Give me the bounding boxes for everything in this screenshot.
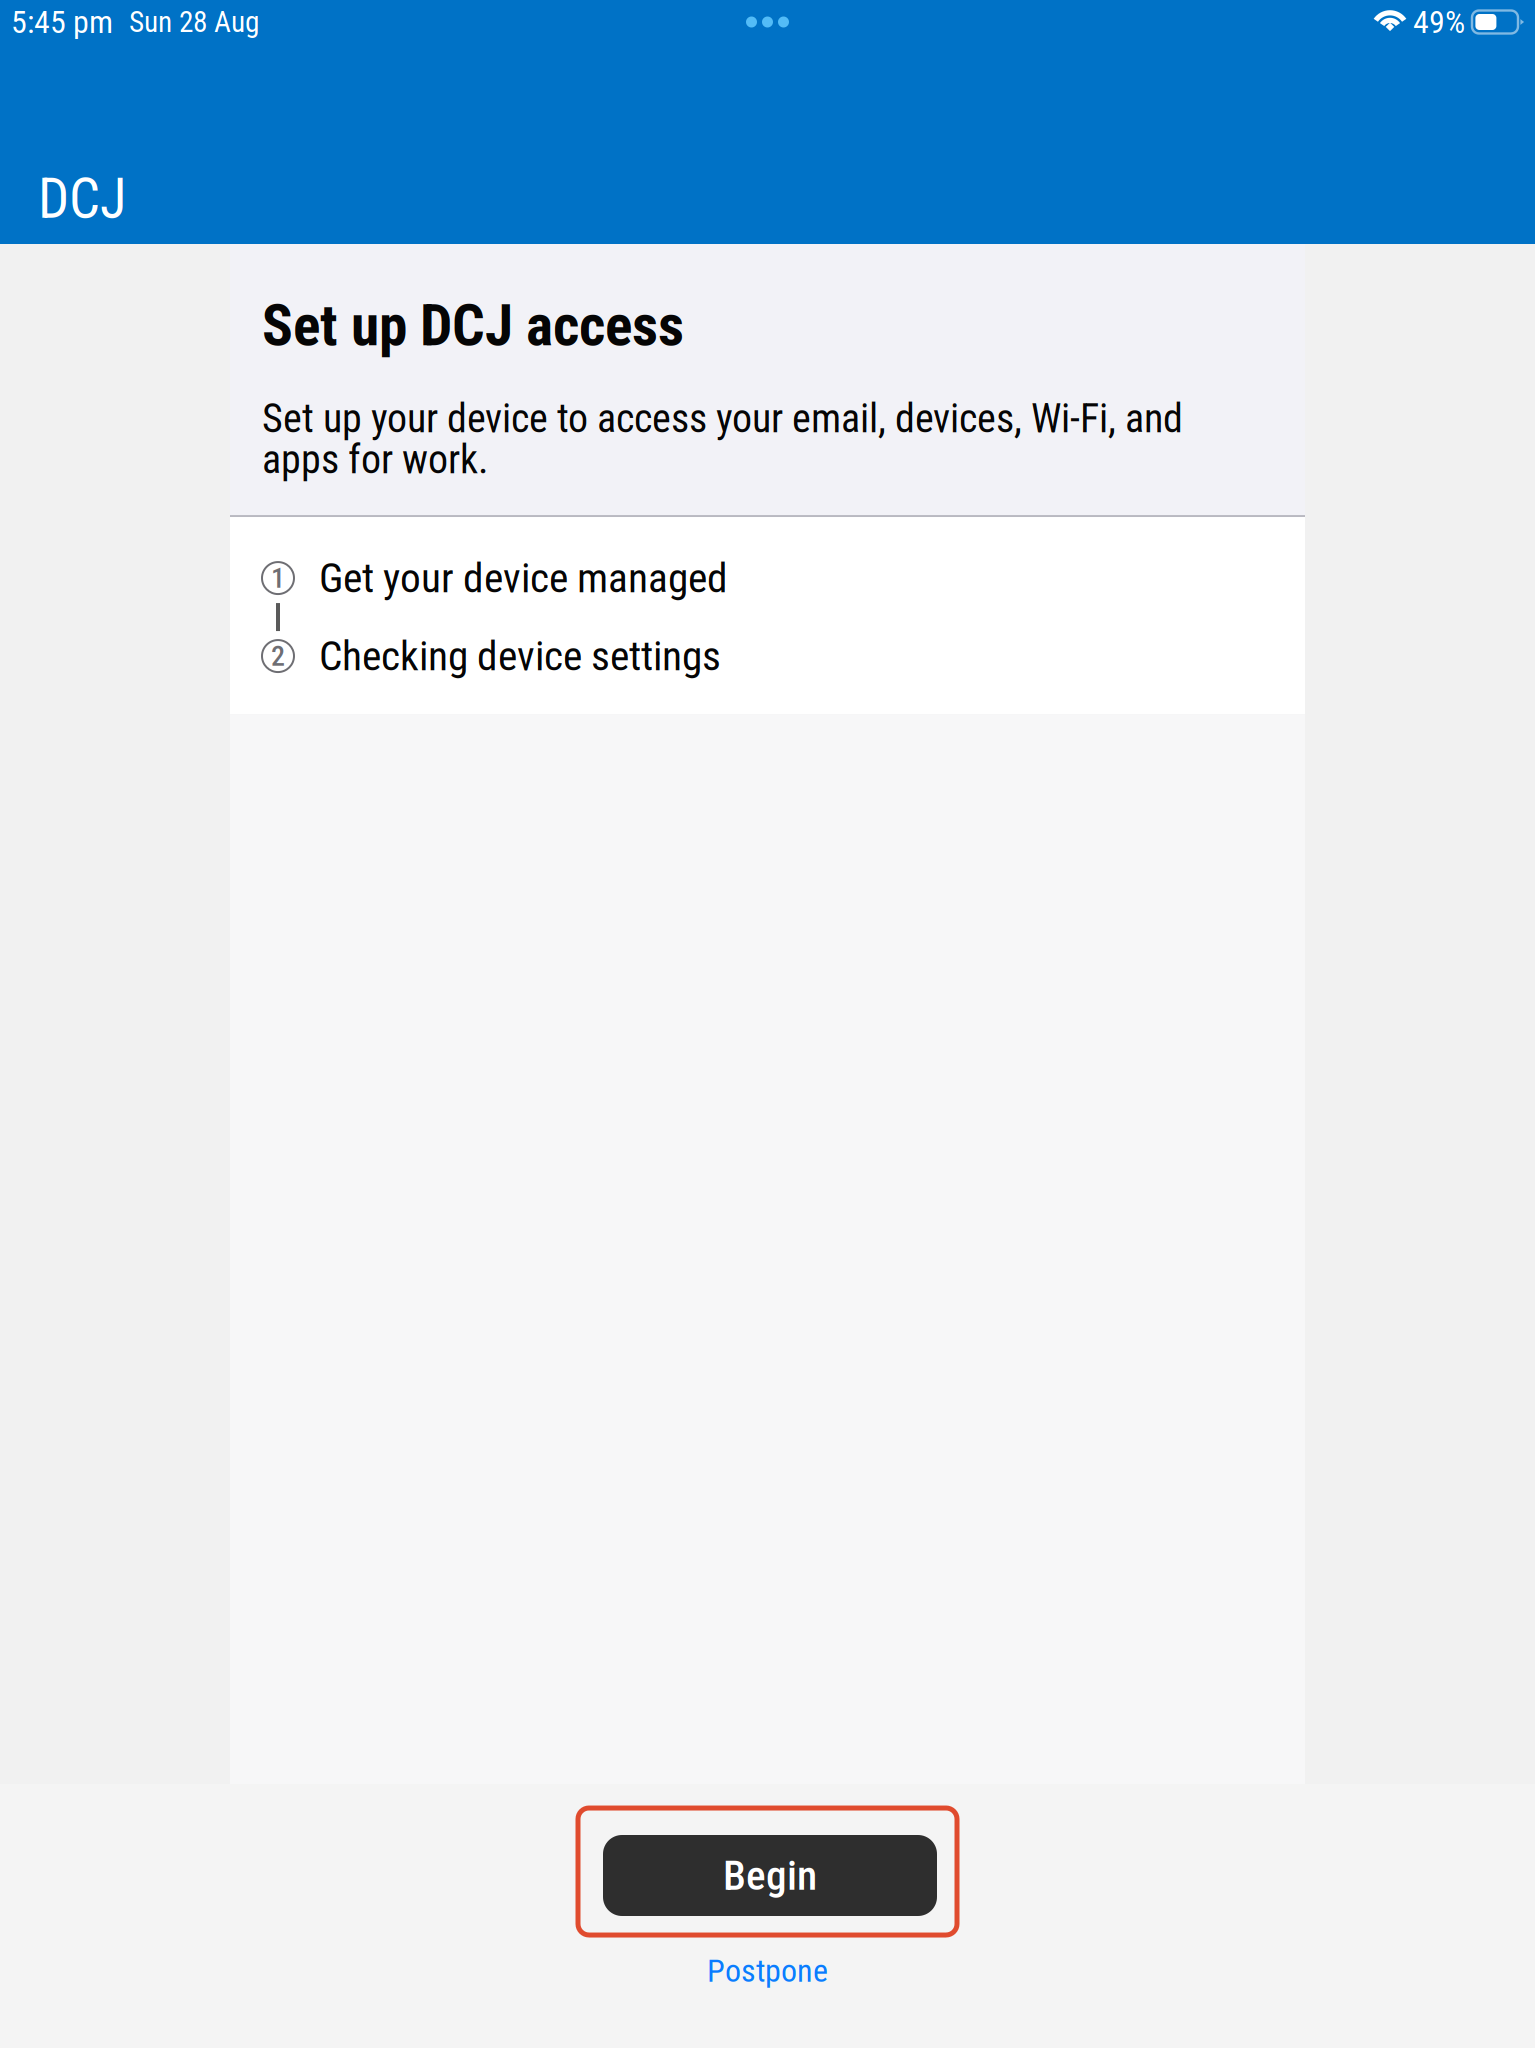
staticText: Sun 28 Aug bbox=[129, 5, 259, 39]
staticText: 1 bbox=[271, 562, 285, 594]
button[interactable]: Postpone bbox=[687, 1946, 848, 1995]
staticText: Checking device settings bbox=[319, 632, 721, 680]
staticText: Set up DCJ access bbox=[262, 292, 684, 359]
staticText: Begin bbox=[723, 1851, 817, 1900]
staticText: 5:45 pm bbox=[11, 3, 113, 41]
button[interactable]: Begin bbox=[578, 1808, 957, 1935]
staticText: Postpone bbox=[707, 1952, 828, 1989]
staticText: DCJ bbox=[38, 167, 126, 231]
staticText: Get your device managed bbox=[319, 554, 728, 602]
staticText: apps for work. bbox=[262, 436, 489, 483]
staticText: Set up your device to access your email,… bbox=[262, 395, 1183, 442]
staticText: 49% bbox=[1413, 3, 1465, 41]
staticText: 2 bbox=[271, 640, 285, 672]
